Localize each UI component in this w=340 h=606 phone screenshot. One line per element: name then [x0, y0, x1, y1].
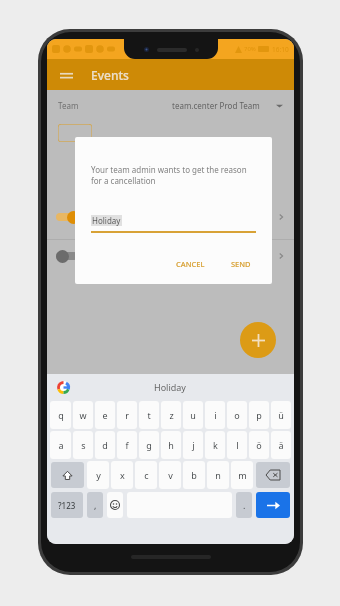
staticText: b — [191, 469, 197, 481]
button[interactable]: , — [87, 492, 103, 518]
staticText: l — [236, 439, 239, 451]
button[interactable]: ?123 — [51, 492, 83, 518]
button[interactable]: Emoji — [107, 492, 123, 518]
button[interactable]: w — [73, 401, 93, 429]
staticText: k — [213, 439, 218, 451]
button[interactable]: Game day — [47, 240, 294, 272]
button[interactable]: h — [161, 431, 181, 459]
button[interactable]: Regular Training — [47, 195, 294, 239]
button[interactable]: y — [87, 461, 109, 489]
staticText: p — [256, 409, 262, 421]
button[interactable]: f — [117, 431, 137, 459]
button[interactable]: j — [183, 431, 203, 459]
button[interactable]: Open navigation menu — [54, 63, 78, 87]
button[interactable]: n — [207, 461, 229, 489]
button[interactable]: o — [227, 401, 247, 429]
button[interactable]: CANCEL — [171, 255, 210, 273]
button[interactable]: q — [50, 401, 71, 429]
staticText: 70% — [244, 45, 256, 53]
staticText: y — [96, 469, 101, 481]
staticText: Team — [58, 100, 79, 111]
button[interactable]: x — [111, 461, 133, 489]
button[interactable]: r — [117, 401, 137, 429]
button[interactable]: m — [231, 461, 253, 489]
button[interactable]: t — [139, 401, 159, 429]
staticText: j — [192, 439, 195, 451]
button[interactable]: c — [135, 461, 157, 489]
staticText: Your team admin wants to get the reason … — [91, 164, 256, 187]
button[interactable]: a — [50, 431, 71, 459]
staticText: o — [234, 409, 240, 421]
staticText: CANCEL — [176, 259, 205, 269]
button[interactable]: s — [73, 431, 93, 459]
button[interactable]: k — [205, 431, 225, 459]
button[interactable]: e — [95, 401, 115, 429]
button[interactable]: Shift — [51, 462, 84, 488]
staticText: ä — [278, 439, 284, 451]
staticText: q — [58, 409, 64, 421]
staticText: s — [81, 439, 86, 451]
staticText: SEND — [231, 259, 251, 269]
button[interactable]: team.center Prod Team — [172, 100, 283, 111]
staticText: n — [215, 469, 221, 481]
staticText: i — [214, 409, 217, 421]
button[interactable]: g — [139, 431, 159, 459]
staticText: d — [102, 439, 108, 451]
button[interactable]: z — [161, 401, 181, 429]
staticText: Holiday — [92, 215, 121, 226]
staticText: 28.09.2019 (20:00 - 22:00) — [89, 213, 173, 223]
button[interactable]: u — [183, 401, 203, 429]
button[interactable]: Enter — [256, 492, 290, 518]
staticText: m — [238, 469, 247, 481]
button[interactable]: b — [183, 461, 205, 489]
button[interactable]: i — [205, 401, 225, 429]
staticText: c — [144, 469, 149, 481]
staticText: a — [58, 439, 64, 451]
button[interactable]: Google — [57, 381, 70, 394]
staticText: u — [190, 409, 196, 421]
staticText: t — [147, 409, 151, 421]
button[interactable]: ü — [271, 401, 291, 429]
staticText: Holiday — [154, 381, 186, 393]
button[interactable]: p — [249, 401, 269, 429]
staticText: v — [168, 469, 173, 481]
staticText: Events — [91, 67, 129, 83]
staticText: ö — [256, 439, 262, 451]
button[interactable]: ö — [249, 431, 269, 459]
staticText: , — [94, 499, 97, 511]
button[interactable]: Filter — [58, 124, 92, 142]
staticText: . — [243, 499, 246, 511]
button[interactable]: SEND — [226, 255, 256, 273]
button[interactable]: . — [236, 492, 252, 518]
staticText: ü — [278, 409, 284, 421]
button[interactable]: d — [95, 431, 115, 459]
staticText: x — [120, 469, 125, 481]
button[interactable]: v — [159, 461, 181, 489]
staticText: e — [102, 409, 108, 421]
button[interactable]: Backspace — [256, 462, 290, 488]
button[interactable]: Add event — [240, 322, 276, 358]
staticText: ?123 — [58, 500, 76, 511]
staticText: Present: 24 (Min: 3) — [89, 225, 152, 235]
staticText: f — [125, 439, 129, 451]
staticText: r — [125, 409, 129, 421]
button[interactable]: l — [227, 431, 247, 459]
staticText: g — [146, 439, 152, 451]
staticText: h — [168, 439, 174, 451]
staticText: z — [169, 409, 174, 421]
staticText: w — [79, 409, 87, 421]
staticText: team.center Prod Team — [172, 100, 260, 111]
button[interactable]: ä — [271, 431, 291, 459]
staticText: 16:10 — [272, 45, 289, 54]
